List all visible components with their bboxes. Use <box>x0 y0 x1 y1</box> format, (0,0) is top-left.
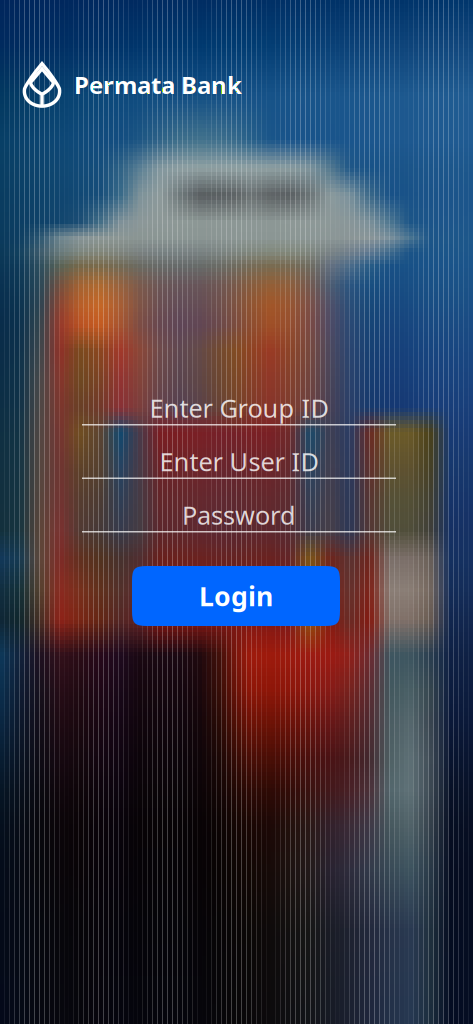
staticText: Enter Group ID <box>149 391 328 425</box>
button[interactable]: Login <box>132 566 340 626</box>
staticText: Permata Bank <box>74 69 242 101</box>
staticText: Login <box>199 578 273 614</box>
staticText: Enter User ID <box>159 445 318 478</box>
staticText: Password <box>182 498 296 532</box>
